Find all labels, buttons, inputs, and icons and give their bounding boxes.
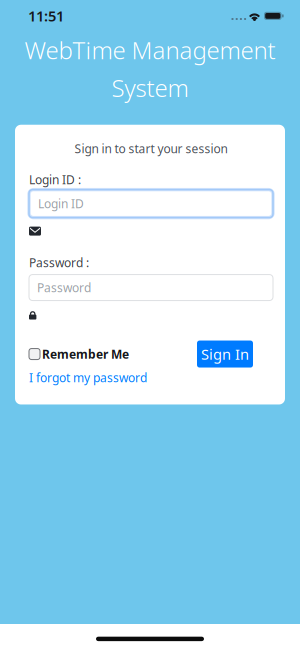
button[interactable]: Password bbox=[29, 275, 273, 301]
button[interactable]: Sign In bbox=[197, 341, 253, 368]
staticText: Login ID : bbox=[29, 172, 81, 188]
staticText: Password bbox=[37, 280, 91, 295]
staticText: System bbox=[111, 72, 188, 104]
staticText: Sign In bbox=[201, 344, 249, 364]
staticText: Sign in to start your session bbox=[74, 141, 227, 157]
button[interactable]: I forgot my password bbox=[29, 370, 147, 385]
button[interactable]: Remember Me bbox=[29, 341, 129, 368]
staticText: Remember Me bbox=[42, 346, 129, 362]
staticText: I forgot my password bbox=[29, 370, 147, 385]
button[interactable]: Login ID bbox=[29, 190, 273, 218]
staticText: WebTime Management bbox=[24, 34, 275, 66]
staticText: Password : bbox=[29, 255, 89, 270]
staticText: 11:51 bbox=[28, 6, 64, 25]
staticText: Login ID bbox=[38, 196, 84, 211]
